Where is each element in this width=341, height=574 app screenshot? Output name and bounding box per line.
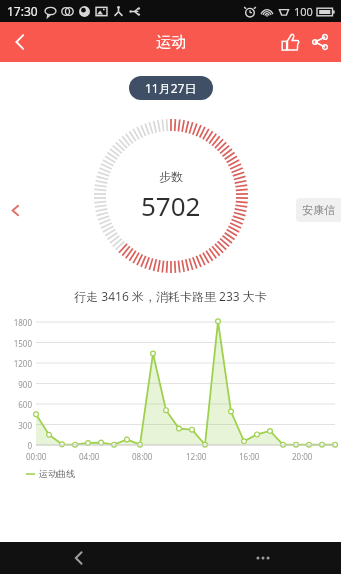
staticText: 1800 [13, 317, 32, 328]
staticText: 安康信 [302, 203, 335, 217]
staticText: 运动曲线 [39, 468, 75, 479]
staticText: 步数 [159, 169, 183, 184]
staticText: 行走 3416 米，消耗卡路里 233 大卡 [74, 288, 267, 304]
staticText: 12:00 [186, 451, 207, 462]
button[interactable]: Like [275, 27, 305, 57]
staticText: 600 [18, 399, 32, 410]
staticText: 11月27日 [145, 80, 197, 96]
button[interactable]: 11月27日 [129, 76, 213, 100]
staticText: 运动 [156, 33, 186, 52]
button[interactable]: Share [305, 27, 335, 57]
button[interactable]: Back [0, 22, 40, 62]
staticText: 300 [18, 420, 32, 431]
staticText: 900 [18, 379, 32, 390]
button[interactable]: Back [64, 543, 94, 573]
staticText: 100 [294, 4, 313, 19]
staticText: 5702 [141, 188, 201, 223]
staticText: 20:00 [292, 451, 313, 462]
staticText: 0 [27, 440, 32, 451]
button[interactable]: Previous day [2, 197, 28, 223]
staticText: 00:00 [26, 451, 47, 462]
button[interactable]: 安康信 [296, 198, 341, 222]
staticText: 17:30 [7, 3, 38, 19]
staticText: 08:00 [132, 451, 153, 462]
staticText: 1500 [13, 338, 32, 349]
staticText: 1200 [13, 358, 32, 369]
button[interactable]: More options [248, 543, 278, 573]
staticText: 16:00 [239, 451, 260, 462]
staticText: 04:00 [79, 451, 100, 462]
